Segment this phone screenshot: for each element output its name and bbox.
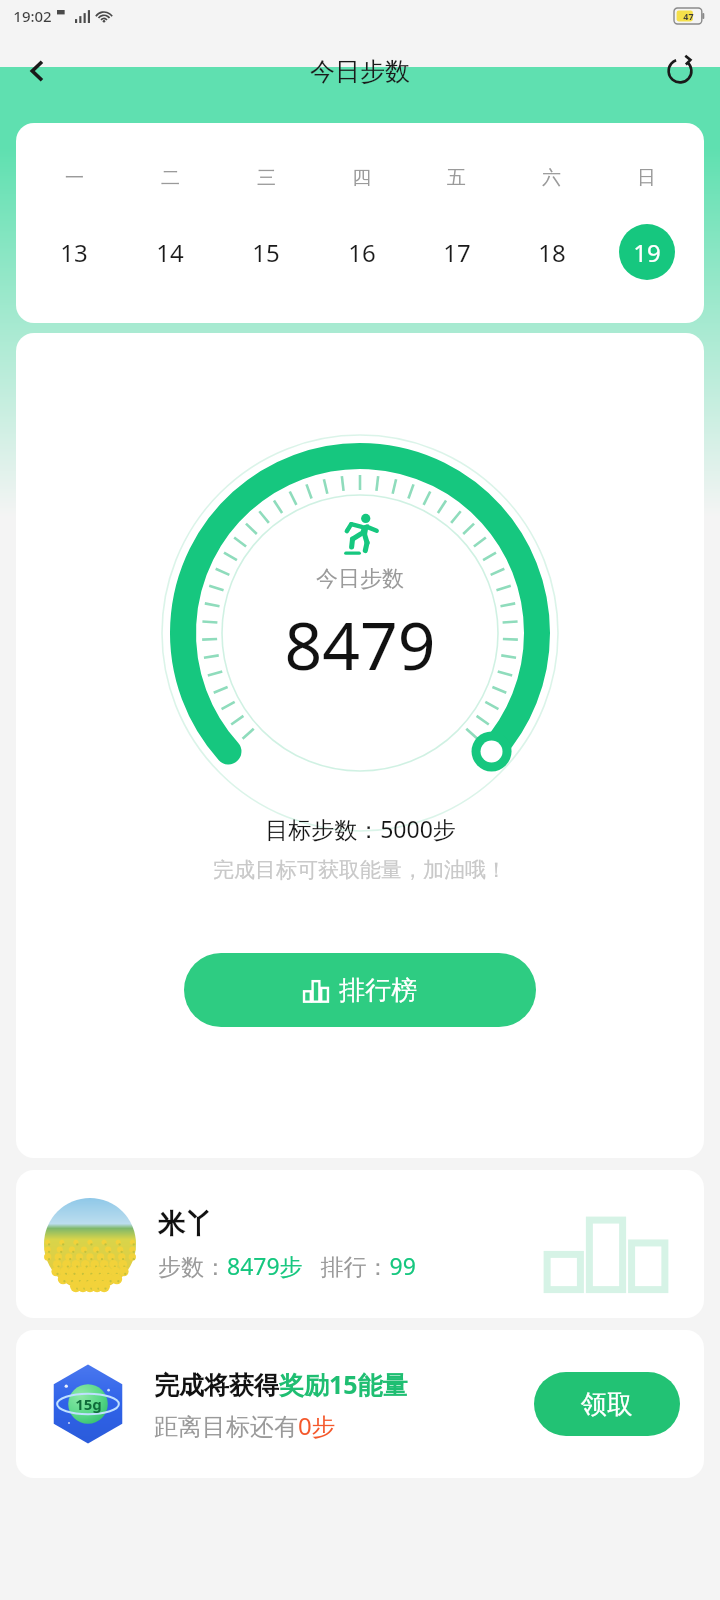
staticText: 四 <box>352 166 371 190</box>
button[interactable]: Back <box>12 45 64 97</box>
staticText: 14 <box>156 236 184 269</box>
button[interactable]: 19 <box>619 224 675 280</box>
staticText: 15 <box>252 236 280 269</box>
staticText: 17 <box>443 236 471 269</box>
staticText: 二 <box>161 166 180 190</box>
button[interactable]: 领取 <box>534 1372 680 1436</box>
staticText: 19:02 <box>13 6 52 26</box>
button[interactable]: 16 <box>334 224 390 280</box>
button[interactable]: 13 <box>46 224 102 280</box>
button[interactable]: 18 <box>524 224 580 280</box>
button[interactable]: Share <box>654 45 706 97</box>
staticText: 完成目标可获取能量，加油哦！ <box>213 857 507 883</box>
staticText: 五 <box>447 166 466 190</box>
staticText: 步数：8479步 排行：99 <box>158 1250 416 1281</box>
staticText: 19 <box>633 236 661 269</box>
staticText: 领取 <box>581 1388 633 1421</box>
staticText: 今日步数 <box>310 56 410 87</box>
staticText: 今日步数 <box>316 565 404 593</box>
staticText: 16 <box>348 236 376 269</box>
staticText: 15g <box>75 1394 102 1414</box>
staticText: 日 <box>637 166 656 190</box>
button[interactable]: 17 <box>429 224 485 280</box>
staticText: 三 <box>257 166 276 190</box>
staticText: 一 <box>65 166 84 190</box>
button[interactable]: 14 <box>142 224 198 280</box>
button[interactable]: 排行榜 <box>184 953 536 1027</box>
staticText: 8479 <box>284 599 436 689</box>
staticText: 六 <box>542 166 561 190</box>
button[interactable]: 15 <box>238 224 294 280</box>
staticText: 13 <box>60 236 88 269</box>
staticText: 18 <box>538 236 566 269</box>
staticText: 排行榜 <box>339 974 417 1007</box>
staticText: 距离目标还有0步 <box>154 1409 336 1442</box>
button[interactable]: 米丫 <box>16 1170 704 1318</box>
staticText: 目标步数：5000步 <box>265 813 456 844</box>
staticText: 47 <box>683 10 694 22</box>
staticText: 米丫 <box>158 1207 212 1241</box>
staticText: 完成将获得奖励15能量 <box>154 1367 408 1401</box>
